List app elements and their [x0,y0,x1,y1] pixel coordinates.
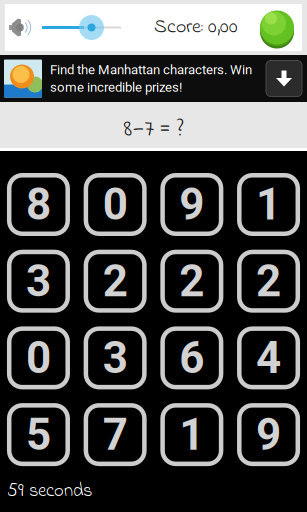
button[interactable]: 0 [7,326,70,389]
staticText: Find the Manhattan characters. Win [50,62,252,77]
button[interactable]: 9 [160,173,223,236]
staticText: 1 [256,179,281,230]
button[interactable]: 5 [7,403,70,466]
button[interactable]: 8 [7,173,70,236]
button[interactable]: Volume [42,14,121,40]
staticText: 3 [26,255,51,307]
button[interactable]: 2 [160,250,223,313]
button[interactable]: 9 [237,403,300,466]
staticText: 7 [103,409,128,460]
button[interactable]: Sound on [258,7,296,47]
staticText: 2 [256,255,281,307]
staticText: Score: 0,00 [154,13,238,42]
button[interactable]: 1 [160,403,223,466]
staticText: 1 [179,409,204,460]
staticText: 3 [103,332,128,384]
staticText: 4 [256,332,281,384]
button[interactable]: 3 [84,326,147,389]
button[interactable]: 2 [237,250,300,313]
staticText: 2 [103,255,128,307]
staticText: 9 [179,179,204,230]
staticText: 8 [26,179,51,230]
staticText: 5 [26,409,51,460]
button[interactable]: 4 [237,326,300,389]
staticText: 59 seconds [7,478,92,505]
staticText: 2 [179,255,204,307]
staticText: 0 [26,332,51,384]
staticText: 8−7 = ? [123,113,183,147]
staticText: 0 [103,179,128,230]
staticText: some incredible prizes! [50,79,182,95]
button[interactable]: 0 [84,173,147,236]
button[interactable]: 6 [160,326,223,389]
button[interactable]: 3 [7,250,70,313]
button[interactable]: 7 [84,403,147,466]
button[interactable]: Advertisement: Find the Manhattan charac… [0,55,307,102]
button[interactable]: 2 [84,250,147,313]
staticText: 6 [179,332,204,384]
staticText: 9 [256,409,281,460]
button[interactable]: 1 [237,173,300,236]
